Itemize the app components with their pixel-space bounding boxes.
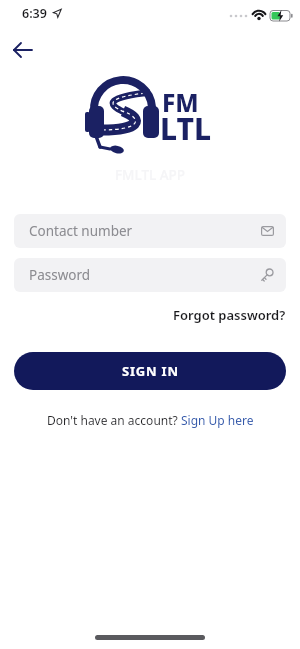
button[interactable] [7, 38, 39, 62]
staticText: LTL [160, 108, 212, 149]
button[interactable]: Forgot password? [173, 306, 286, 324]
staticText: 6:39 [22, 5, 47, 22]
staticText: FM [162, 86, 199, 119]
button[interactable]: Password [14, 258, 286, 292]
staticText: Don't have an account? [47, 412, 181, 428]
button[interactable]: Contact number [14, 214, 286, 248]
staticText: SIGN IN [122, 362, 179, 380]
button[interactable]: SIGN IN [14, 352, 286, 390]
button[interactable]: Sign Up here [181, 412, 254, 428]
staticText: Password [29, 266, 91, 284]
staticText: Contact number [29, 222, 133, 240]
